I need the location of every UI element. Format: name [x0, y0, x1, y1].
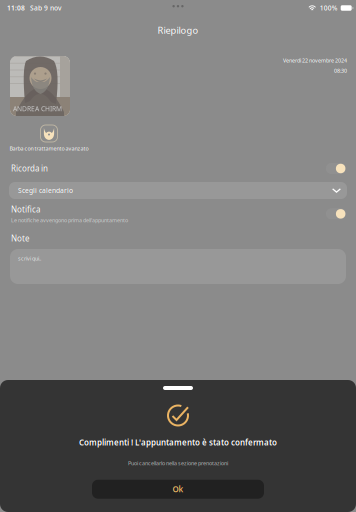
staticText: Riepilogo	[157, 24, 198, 36]
button[interactable]: Ricorda in	[326, 163, 346, 174]
staticText: Venerdì 22 novembre 2024	[283, 57, 347, 64]
staticText: 11:08	[7, 4, 25, 12]
staticText: Complimenti ! L'appuntamento è stato con…	[79, 437, 277, 448]
staticText: 08:30	[334, 67, 347, 74]
staticText: Notifica	[11, 204, 40, 215]
staticText: 100%	[320, 4, 338, 12]
staticText: scrivi qui..	[18, 255, 41, 262]
staticText: Scegli calendario	[18, 186, 73, 195]
staticText: Sab 9 nov	[30, 4, 62, 12]
staticText: Ricorda in	[11, 163, 48, 174]
staticText: Ok	[172, 484, 183, 494]
button[interactable]: Ok	[92, 480, 264, 499]
staticText: Barba con trattamento avanzato	[9, 145, 88, 152]
button[interactable]: Notifica	[326, 208, 346, 219]
staticText: Le notifiche avvengono prima dell'appunt…	[11, 217, 128, 224]
staticText: Note	[11, 233, 30, 244]
button[interactable]: Scegli calendario	[9, 182, 347, 199]
staticText: Puoi cancellarlo nella sezione prenotazi…	[128, 460, 228, 467]
staticText: ANDREA CHIRM	[13, 104, 62, 113]
